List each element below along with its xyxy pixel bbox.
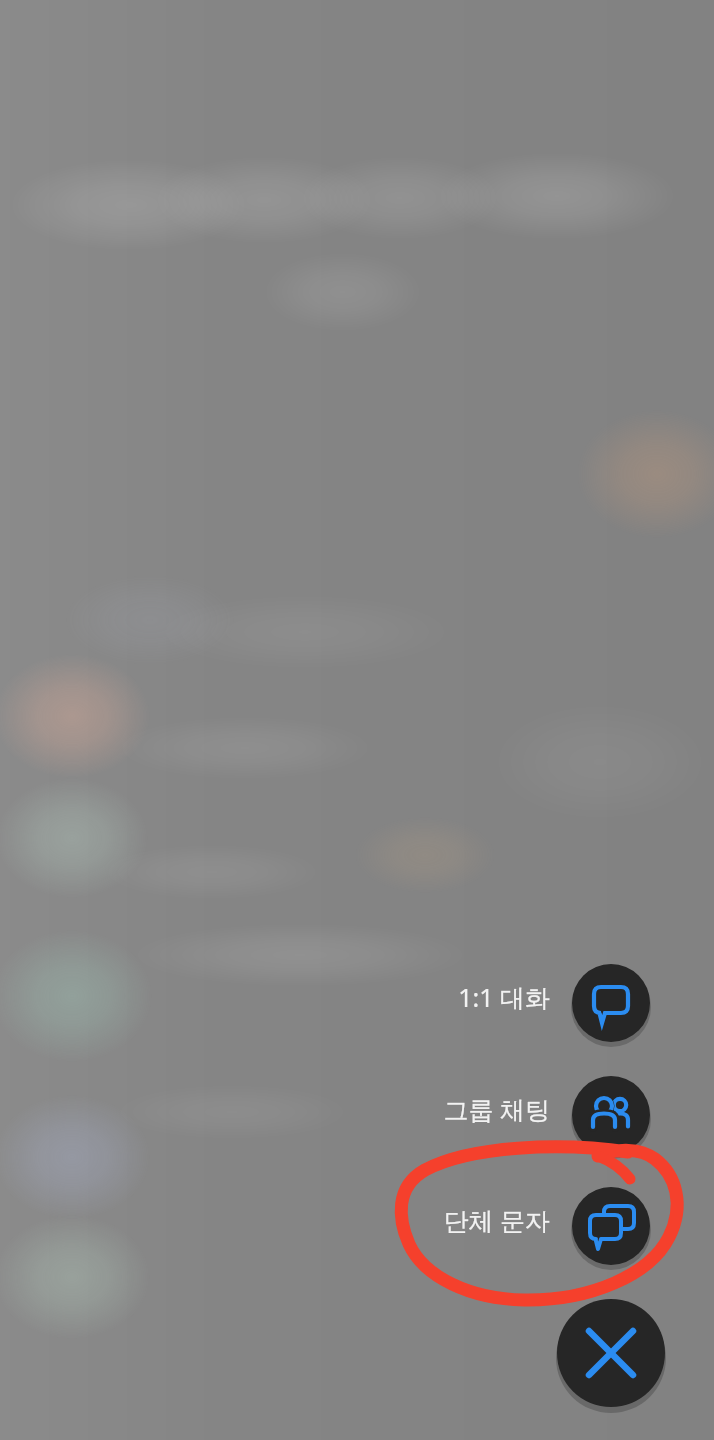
button[interactable]: 1:1 대화 [385, 980, 550, 1014]
button[interactable]: 그룹 채팅 [570, 1074, 652, 1156]
staticText: 그룹 채팅 [443, 1092, 550, 1126]
button[interactable]: 그룹 채팅 [385, 1092, 550, 1126]
button[interactable]: 1:1 대화 [570, 962, 652, 1044]
button[interactable]: 단체 문자 [570, 1185, 652, 1267]
button[interactable]: 닫기 [555, 1297, 667, 1409]
button[interactable]: 단체 문자 [385, 1203, 550, 1237]
staticText: 1:1 대화 [458, 980, 550, 1014]
staticText: 단체 문자 [443, 1203, 550, 1237]
